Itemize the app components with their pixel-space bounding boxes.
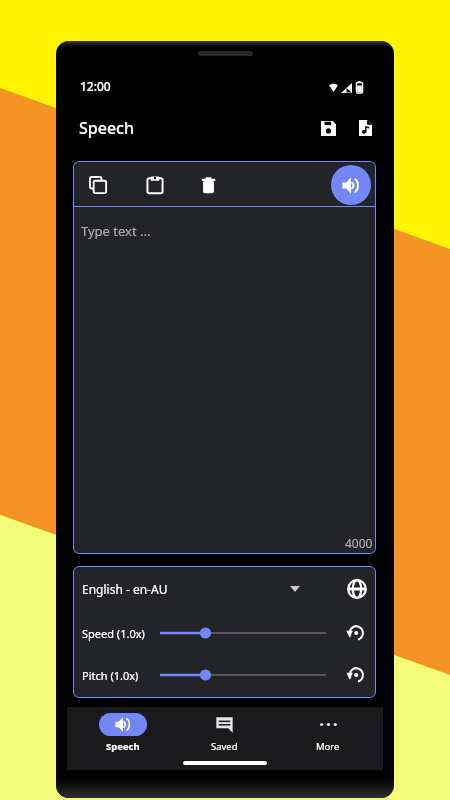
staticText: 12:00 [80,78,111,94]
button[interactable]: Speak [331,165,371,205]
button[interactable]: More [304,708,352,758]
button[interactable]: Paste [134,164,176,206]
button[interactable]: Reset [339,659,371,691]
staticText: 4000 [345,535,373,551]
staticText: English - en-AU [82,581,168,597]
staticText: Speech [79,117,134,139]
staticText: Type text ... [81,222,151,240]
button[interactable]: Language [337,569,376,608]
button[interactable]: Saved [200,708,248,758]
button[interactable]: Reset [339,617,371,649]
button[interactable]: Export audio file [345,108,385,148]
button[interactable] [160,622,326,644]
button[interactable]: English - en-AU [78,572,308,606]
button[interactable]: Save [308,108,348,148]
button[interactable] [160,664,326,686]
button[interactable]: Speech [99,708,147,758]
staticText: Pitch (1.0x) [82,668,139,683]
staticText: Speed (1.0x) [82,626,145,641]
staticText: More [316,740,340,753]
button[interactable]: Copy [77,164,119,206]
staticText: Speech [106,740,140,753]
staticText: Saved [211,740,238,753]
button[interactable]: Delete [187,164,229,206]
